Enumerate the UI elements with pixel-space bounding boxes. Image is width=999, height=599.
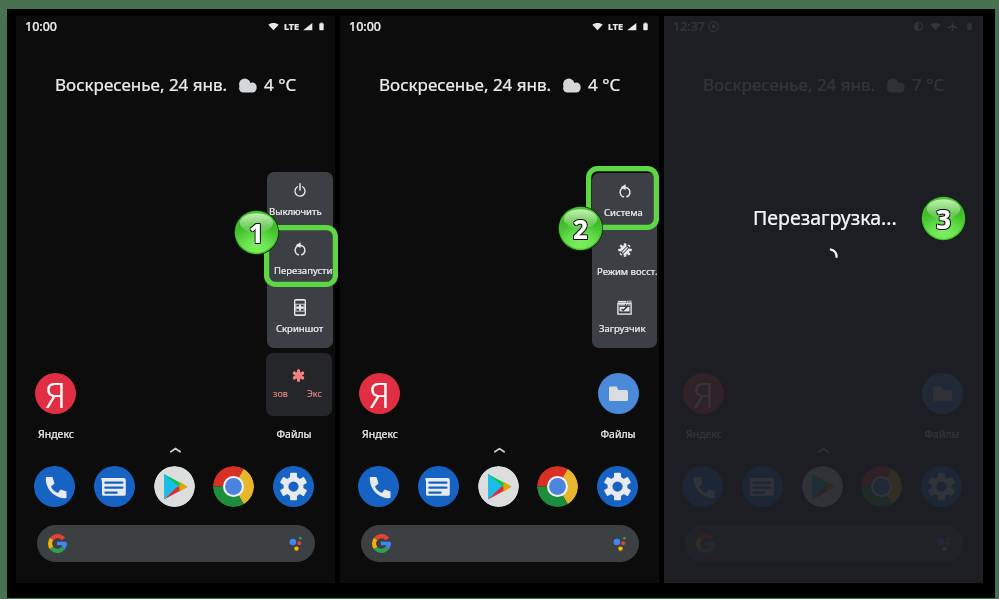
staticText: 3	[937, 201, 952, 236]
button[interactable]: Chrome	[537, 466, 578, 507]
staticText: LTE	[608, 20, 624, 32]
staticText: 1	[250, 215, 265, 250]
button[interactable]: Phone	[358, 466, 399, 507]
button[interactable]: Перезапустить	[267, 231, 333, 290]
staticText: Яндекс	[20, 427, 92, 441]
staticText: 3	[937, 202, 952, 237]
staticText: Я	[693, 373, 714, 413]
staticText: 2	[573, 212, 588, 247]
staticText: 2	[574, 211, 589, 246]
staticText: Режим восст.	[597, 265, 657, 278]
button[interactable]: Settings	[273, 466, 314, 507]
staticText: 3	[935, 200, 950, 235]
staticText: Перезагрузка...	[753, 204, 897, 231]
staticText: LTE	[284, 20, 300, 32]
staticText: Воскресенье, 24 янв.	[379, 73, 552, 96]
button[interactable]: Phone	[34, 466, 75, 507]
staticText: Файлы	[582, 427, 654, 441]
staticText: зов	[273, 387, 288, 399]
staticText: 3	[936, 200, 951, 235]
staticText: 10:00	[349, 18, 382, 35]
staticText: Я	[45, 373, 66, 413]
button[interactable]: Chrome	[213, 466, 254, 507]
button[interactable]: Скриншот	[267, 290, 333, 348]
staticText: Воскресенье, 24 янв.	[55, 73, 228, 96]
staticText: Я	[369, 373, 390, 413]
staticText: Загрузчик	[599, 322, 646, 335]
button[interactable]: Messages	[94, 466, 135, 507]
staticText: Скриншот	[276, 322, 324, 335]
staticText: 2	[573, 210, 588, 245]
staticText: 3	[937, 200, 952, 235]
staticText: 3	[936, 202, 951, 237]
staticText: 2	[573, 211, 588, 246]
staticText: 2	[572, 211, 587, 246]
staticText: 4 °C	[264, 73, 297, 96]
button[interactable]: Chrome	[861, 466, 902, 507]
staticText: 3	[935, 202, 950, 237]
staticText: 1	[248, 214, 263, 249]
staticText: Файлы	[258, 427, 330, 441]
button[interactable]: Файлы	[598, 373, 639, 414]
button[interactable]: Settings	[597, 466, 638, 507]
button[interactable]: Play Store	[802, 466, 843, 507]
staticText: 12:37	[673, 18, 706, 35]
staticText: 1	[248, 216, 263, 251]
staticText: 10:00	[25, 18, 58, 35]
staticText: 2	[572, 212, 587, 247]
staticText: 3	[936, 201, 951, 236]
button[interactable]: Загрузчик	[592, 291, 657, 348]
button[interactable]: Messages	[418, 466, 459, 507]
staticText: Экс	[307, 387, 322, 399]
button[interactable]: Режим восст.	[592, 232, 657, 291]
button[interactable]: Яндекс	[683, 373, 724, 414]
staticText: 3	[935, 201, 950, 236]
button[interactable]: Яндекс	[35, 373, 76, 414]
staticText: Перезапустить	[274, 264, 333, 277]
staticText: 1	[249, 214, 264, 249]
staticText: Воскресенье, 24 янв.	[703, 73, 876, 96]
staticText: 2	[572, 210, 587, 245]
staticText: 7 °C	[912, 73, 945, 96]
button[interactable]: Яндекс	[359, 373, 400, 414]
button[interactable]: Messages	[742, 466, 783, 507]
staticText: 1	[248, 215, 263, 250]
staticText: Яндекс	[344, 427, 416, 441]
staticText: Файлы	[906, 427, 978, 441]
staticText: Выключить	[269, 205, 322, 218]
staticText: 1	[250, 214, 265, 249]
button[interactable]: Выключить	[267, 172, 333, 231]
button[interactable]: Play Store	[478, 466, 519, 507]
button[interactable]: Search	[37, 525, 315, 562]
staticText: 4 °C	[588, 73, 621, 96]
button[interactable]: Phone	[682, 466, 723, 507]
button[interactable]: Система	[592, 173, 657, 232]
staticText: Система	[604, 206, 643, 219]
button[interactable]: Settings	[921, 466, 962, 507]
button[interactable]: Play Store	[154, 466, 195, 507]
button[interactable]: Search	[361, 525, 639, 562]
staticText: 1	[249, 215, 264, 250]
staticText: 2	[574, 210, 589, 245]
staticText: 1	[250, 216, 265, 251]
staticText: Яндекс	[668, 427, 740, 441]
staticText: 1	[249, 216, 264, 251]
staticText: 2	[574, 212, 589, 247]
